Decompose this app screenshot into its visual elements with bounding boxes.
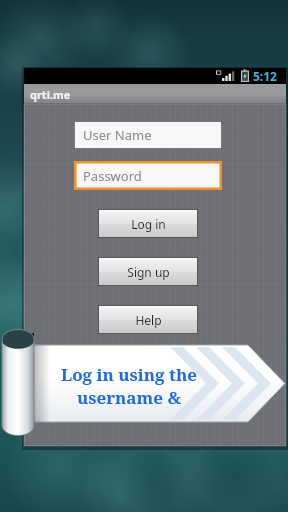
- staticText: Log in using the: [61, 363, 197, 386]
- staticText: qrti.me: [30, 87, 71, 102]
- button[interactable]: Password: [74, 161, 222, 190]
- staticText: Log in: [131, 216, 166, 232]
- button[interactable]: Help: [98, 305, 198, 334]
- button[interactable]: Log in: [98, 209, 198, 238]
- staticText: Sign up: [127, 264, 170, 280]
- other: Log in using the username and password: [0, 0, 288, 512]
- staticText: username & password: [44, 386, 214, 411]
- button[interactable]: User Name: [74, 121, 222, 149]
- button[interactable]: Sign up: [98, 257, 198, 286]
- staticText: 5:12: [253, 68, 277, 84]
- staticText: Password: [83, 167, 142, 185]
- staticText: User Name: [83, 126, 152, 144]
- staticText: Help: [135, 312, 162, 328]
